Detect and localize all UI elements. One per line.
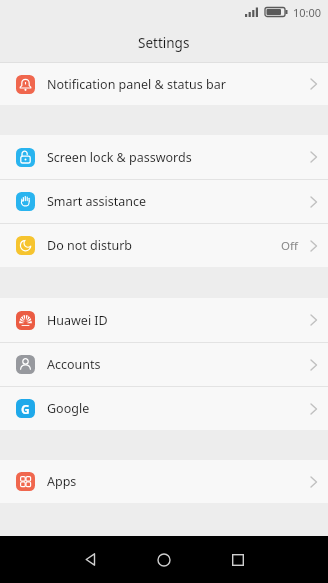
staticText: Smart assistance — [47, 193, 146, 210]
staticText: 10:00 — [293, 5, 322, 20]
staticText: Huawei ID — [47, 312, 108, 329]
button[interactable]: Huawei ID — [0, 298, 328, 342]
button[interactable]: Notification panel & status bar — [0, 63, 328, 105]
staticText: Do not disturb — [47, 237, 132, 254]
button[interactable]: G — [0, 387, 328, 430]
button[interactable]: Apps — [0, 460, 328, 503]
staticText: Off — [281, 238, 298, 254]
staticText: G — [21, 401, 30, 417]
button[interactable] — [201, 536, 275, 583]
button[interactable]: Do not disturb — [0, 224, 328, 267]
staticText: Apps — [47, 473, 77, 490]
button[interactable]: Screen lock & passwords — [0, 135, 328, 179]
staticText: Screen lock & passwords — [47, 149, 192, 166]
staticText: Settings — [138, 34, 190, 52]
button[interactable]: Smart assistance — [0, 180, 328, 223]
staticText: Notification panel & status bar — [47, 76, 226, 93]
button[interactable]: Accounts — [0, 343, 328, 386]
staticText: Google — [47, 400, 90, 417]
staticText: Accounts — [47, 356, 101, 373]
button[interactable] — [53, 536, 127, 583]
button[interactable] — [127, 536, 201, 583]
